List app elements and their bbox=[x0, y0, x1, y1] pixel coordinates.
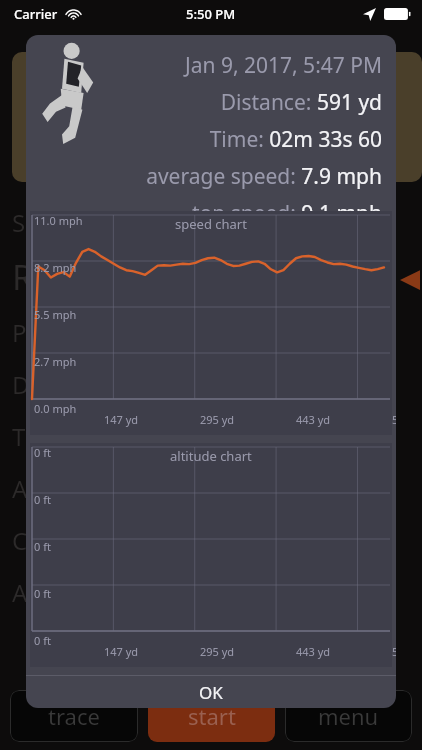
staticText: top speed: 9.1 mph bbox=[192, 199, 382, 211]
staticText: Speed bbox=[12, 206, 82, 239]
staticText: Run bbox=[12, 254, 76, 300]
staticText: Time: 02m 33s 60 bbox=[209, 125, 382, 154]
staticText: Altitude bbox=[12, 472, 101, 505]
staticText: Calories bbox=[12, 524, 103, 557]
staticText: OK bbox=[199, 681, 223, 704]
staticText: 0 ft bbox=[34, 586, 51, 601]
staticText: 0.0 mph bbox=[34, 401, 77, 416]
button[interactable]: menu bbox=[285, 690, 412, 742]
staticText: 5.5 mph bbox=[34, 307, 77, 322]
staticText: 0 ft bbox=[34, 539, 51, 554]
staticText: 0 ft bbox=[34, 492, 51, 507]
staticText: 591 yd bbox=[392, 644, 396, 659]
staticText: menu bbox=[318, 701, 379, 731]
staticText: 443 yd bbox=[296, 412, 331, 427]
staticText: Time bbox=[12, 420, 68, 453]
button[interactable]: OK bbox=[26, 676, 396, 708]
staticText: Average bbox=[12, 576, 105, 609]
staticText: 0 ft bbox=[34, 445, 51, 460]
staticText: 11.0 mph bbox=[34, 213, 83, 228]
staticText: Distance: 591 yd bbox=[220, 88, 382, 117]
staticText: Jan 9, 2017, 5:47 PM bbox=[184, 51, 382, 80]
staticText: Distance bbox=[12, 368, 110, 401]
staticText: start bbox=[188, 701, 236, 731]
staticText: trace bbox=[48, 701, 100, 731]
staticText: Pace bbox=[12, 316, 66, 349]
staticText: 147 yd bbox=[104, 412, 139, 427]
staticText: altitude chart bbox=[170, 447, 252, 465]
button[interactable]: start bbox=[148, 690, 275, 742]
staticText: 591 yd bbox=[392, 412, 396, 427]
staticText: 147 yd bbox=[104, 644, 139, 659]
staticText: speed chart bbox=[175, 215, 247, 233]
staticText: 0 ft bbox=[34, 633, 51, 648]
staticText: 295 yd bbox=[200, 644, 235, 659]
staticText: 8.2 mph bbox=[34, 260, 77, 275]
staticText: 2.7 mph bbox=[34, 354, 77, 369]
staticText: Carrier bbox=[14, 5, 58, 23]
staticText: average speed: 7.9 mph bbox=[146, 162, 382, 191]
button[interactable]: trace bbox=[10, 690, 138, 742]
staticText: 5:50 PM bbox=[186, 5, 236, 23]
staticText: 443 yd bbox=[296, 644, 331, 659]
staticText: 295 yd bbox=[200, 412, 235, 427]
